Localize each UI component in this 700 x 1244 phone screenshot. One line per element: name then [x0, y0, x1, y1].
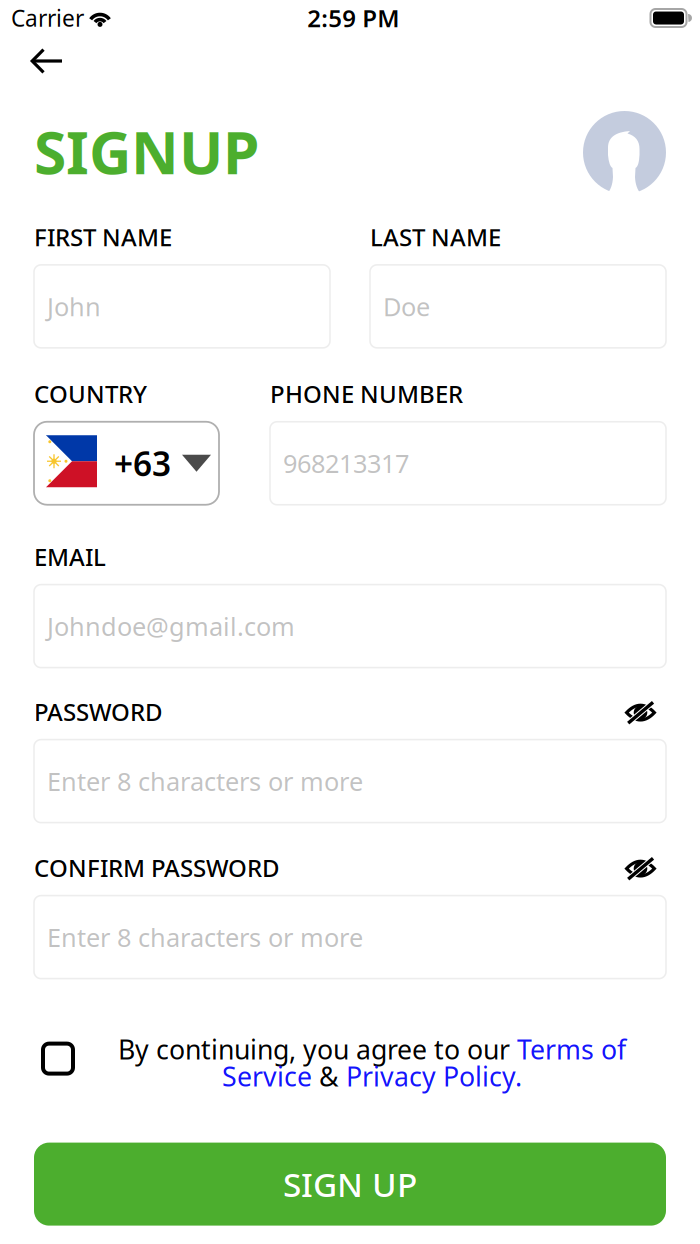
staticText: EMAIL [34, 541, 106, 573]
staticText: PHONE NUMBER [270, 378, 463, 410]
staticText: SIGNUP [34, 112, 259, 190]
button[interactable]: Back [0, 36, 84, 86]
button[interactable]: Johndoe@gmail.com [34, 585, 666, 668]
staticText: FIRST NAME [34, 221, 172, 253]
button[interactable]: Agree to terms and conditions [41, 1046, 75, 1080]
staticText: Privacy Policy. [346, 1058, 522, 1094]
staticText: 968213317 [283, 446, 409, 480]
button[interactable]: Show password [625, 856, 666, 881]
button[interactable]: Show password [625, 700, 666, 725]
staticText: Service [222, 1058, 312, 1094]
button[interactable]: John [34, 265, 330, 348]
button[interactable]: Enter 8 characters or more [34, 740, 666, 823]
staticText: Doe [383, 290, 430, 323]
staticText: CONFIRM PASSWORD [34, 852, 280, 884]
button[interactable]: 968213317 [270, 422, 666, 505]
staticText: John [47, 290, 101, 323]
button[interactable]: +63 [34, 422, 219, 505]
staticText: Carrier [11, 3, 84, 33]
staticText: Enter 8 characters or more [47, 920, 363, 954]
staticText: PASSWORD [34, 696, 163, 728]
button[interactable]: Doe [370, 265, 666, 348]
button[interactable]: SIGN UP [34, 1143, 666, 1226]
staticText: COUNTRY [34, 378, 147, 410]
staticText: +63 [114, 441, 171, 485]
staticText: Enter 8 characters or more [47, 764, 363, 798]
staticText: Johndoe@gmail.com [47, 609, 295, 643]
staticText: SIGN UP [283, 1162, 417, 1206]
staticText: By continuing, you agree to our [118, 1031, 517, 1067]
staticText: LAST NAME [370, 221, 501, 253]
button[interactable]: Enter 8 characters or more [34, 896, 666, 979]
staticText: & [312, 1058, 346, 1094]
staticText: 2:59 PM [307, 2, 399, 34]
staticText: Terms of [517, 1031, 626, 1067]
